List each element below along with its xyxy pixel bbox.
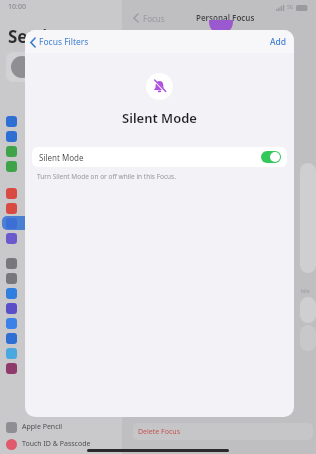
button[interactable]: Settings item bbox=[6, 188, 17, 199]
staticText: Turn Silent Mode on or off while in this… bbox=[37, 172, 176, 181]
button[interactable]: Settings item bbox=[6, 303, 17, 314]
staticText: Silent Mode bbox=[25, 109, 294, 127]
button[interactable]: Settings item bbox=[6, 333, 17, 344]
button[interactable]: Add bbox=[270, 36, 287, 48]
staticText: Focus bbox=[143, 13, 165, 24]
button[interactable]: Settings item bbox=[6, 203, 17, 214]
button[interactable]: Settings item bbox=[6, 258, 17, 269]
staticText: 10:00 bbox=[8, 2, 26, 12]
staticText: 5G bbox=[287, 4, 294, 11]
button[interactable]: Settings item bbox=[6, 233, 17, 244]
button[interactable]: Settings item bbox=[6, 318, 17, 329]
staticText: Focus Filters bbox=[39, 36, 89, 48]
button[interactable]: Settings item bbox=[6, 273, 17, 284]
staticText: Personal Focus bbox=[196, 12, 255, 23]
staticText: Apple Pencil bbox=[22, 422, 63, 432]
button[interactable]: Apple Pencil bbox=[6, 420, 126, 434]
button[interactable]: Settings item bbox=[6, 116, 17, 127]
staticText: bile bbox=[301, 288, 310, 295]
staticText: Silent Mode bbox=[39, 152, 84, 163]
button[interactable] bbox=[133, 423, 313, 440]
button[interactable]: Touch ID & Passcode bbox=[6, 437, 126, 451]
staticText: Add bbox=[270, 36, 287, 48]
button[interactable]: Silent Mode bbox=[32, 147, 287, 167]
button[interactable]: Settings item bbox=[6, 288, 17, 299]
button[interactable]: Settings item bbox=[6, 146, 17, 157]
button[interactable]: Settings item bbox=[6, 363, 17, 374]
staticText: Settings bbox=[8, 25, 78, 48]
button[interactable]: Focus Filters bbox=[30, 36, 89, 48]
button[interactable]: Settings item bbox=[6, 348, 17, 359]
button[interactable] bbox=[2, 216, 114, 230]
staticText: Touch ID & Passcode bbox=[22, 439, 91, 449]
button[interactable]: Settings item bbox=[6, 131, 17, 142]
button[interactable]: Settings item bbox=[6, 161, 17, 172]
staticText: Delete Focus bbox=[138, 427, 181, 437]
